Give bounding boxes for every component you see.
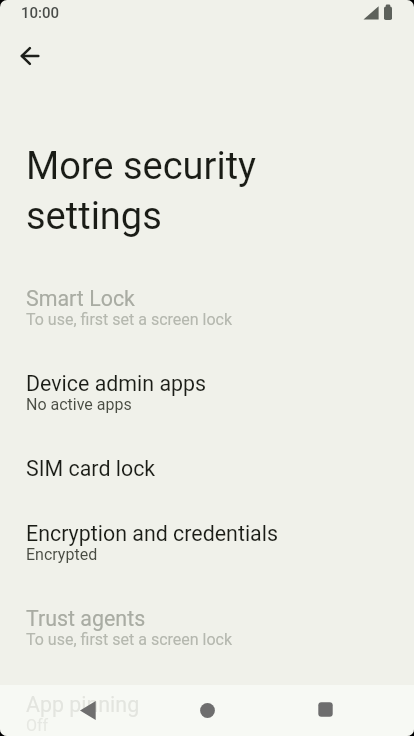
staticText: settings	[26, 194, 162, 239]
staticText: SIM card lock	[26, 456, 156, 481]
staticText: No active apps	[26, 395, 132, 414]
staticText: To use, first set a screen lock	[26, 310, 233, 329]
button[interactable]: Encryption and credentials	[0, 509, 414, 594]
button[interactable]: SIM card lock	[0, 444, 414, 509]
button[interactable]: Device admin apps	[0, 359, 414, 444]
staticText: To use, first set a screen lock	[26, 630, 233, 649]
staticText: 10:00	[21, 4, 60, 22]
button[interactable]: App pinning	[0, 680, 414, 736]
button[interactable]: Smart Lock	[0, 274, 414, 359]
staticText: Encrypted	[26, 545, 98, 564]
staticText: Off	[26, 716, 49, 735]
staticText: More security	[26, 144, 257, 189]
button[interactable]	[305, 689, 345, 729]
button[interactable]: Trust agents	[0, 594, 414, 679]
staticText: Trust agents	[26, 606, 146, 631]
button[interactable]	[8, 34, 52, 78]
button[interactable]	[68, 690, 108, 730]
staticText: Encryption and credentials	[26, 521, 278, 546]
staticText: Device admin apps	[26, 371, 207, 396]
staticText: Smart Lock	[26, 286, 135, 311]
staticText: App pinning	[26, 692, 140, 717]
button[interactable]	[187, 690, 227, 730]
